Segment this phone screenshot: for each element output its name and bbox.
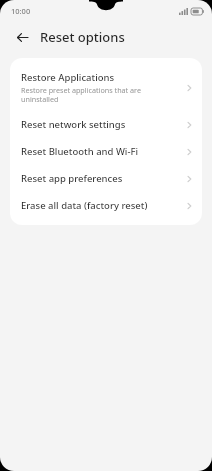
button[interactable]: Reset app preferences bbox=[10, 165, 202, 192]
staticText: Reset network settings bbox=[21, 118, 126, 131]
button[interactable]: Back bbox=[13, 28, 31, 46]
button[interactable]: Reset network settings bbox=[10, 111, 202, 138]
staticText: Erase all data (factory reset) bbox=[21, 199, 148, 212]
staticText: Restore Applications bbox=[21, 71, 115, 84]
staticText: Reset options bbox=[40, 28, 125, 46]
button[interactable]: Restore Applications bbox=[10, 64, 202, 111]
staticText: Restore preset applications that are uni… bbox=[21, 85, 149, 104]
button[interactable]: Reset Bluetooth and Wi-Fi bbox=[10, 138, 202, 165]
button[interactable]: Erase all data (factory reset) bbox=[10, 192, 202, 219]
staticText: Reset Bluetooth and Wi-Fi bbox=[21, 145, 139, 158]
staticText: 10:00 bbox=[11, 6, 31, 16]
staticText: Reset app preferences bbox=[21, 172, 123, 185]
